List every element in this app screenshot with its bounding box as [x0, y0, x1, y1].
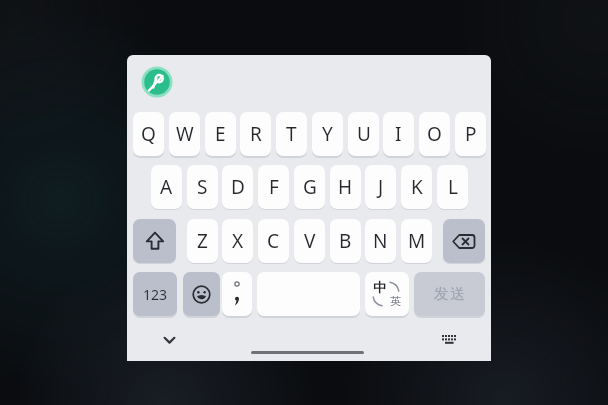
button[interactable]: T	[276, 112, 307, 156]
button[interactable]: O	[419, 112, 450, 156]
button[interactable]	[133, 219, 176, 263]
button[interactable]: J	[365, 165, 396, 209]
button[interactable]	[141, 66, 173, 98]
staticText: P	[465, 121, 477, 147]
staticText: E	[215, 121, 226, 147]
button[interactable]: E	[205, 112, 236, 156]
button[interactable]: C	[258, 219, 289, 263]
button[interactable]	[222, 272, 252, 316]
button[interactable]: 123	[133, 272, 177, 316]
button[interactable]: F	[258, 165, 289, 209]
staticText: S	[197, 174, 208, 200]
button[interactable]: Q	[133, 112, 164, 156]
staticText: K	[411, 174, 423, 200]
staticText: G	[303, 174, 317, 200]
button[interactable]	[156, 330, 182, 350]
staticText: A	[160, 174, 173, 200]
button[interactable]: K	[401, 165, 432, 209]
button[interactable]: L	[437, 165, 468, 209]
button[interactable]	[251, 351, 364, 354]
staticText: H	[338, 174, 353, 200]
staticText: Z	[197, 228, 208, 254]
staticText: L	[448, 174, 458, 200]
button[interactable]: N	[365, 219, 396, 263]
button[interactable]: V	[294, 219, 325, 263]
staticText: I	[395, 121, 402, 147]
button[interactable]: G	[294, 165, 325, 209]
button[interactable]: I	[383, 112, 414, 156]
button[interactable]	[436, 330, 462, 350]
button[interactable]: X	[222, 219, 253, 263]
button[interactable]: Y	[312, 112, 343, 156]
staticText: D	[231, 174, 245, 200]
button[interactable]: B	[330, 219, 361, 263]
staticText: N	[373, 228, 388, 254]
staticText: 123	[143, 285, 168, 304]
button[interactable]: A	[151, 165, 182, 209]
staticText: X	[232, 228, 244, 254]
button[interactable]: 中	[365, 272, 409, 316]
button[interactable]: S	[187, 165, 218, 209]
staticText: V	[304, 228, 316, 254]
staticText: 发送	[433, 285, 466, 304]
staticText: R	[250, 121, 262, 147]
staticText: J	[378, 174, 384, 200]
button[interactable]: U	[348, 112, 379, 156]
button[interactable]: W	[169, 112, 200, 156]
button[interactable]: 发送	[414, 272, 485, 316]
staticText: F	[269, 174, 279, 200]
button[interactable]: D	[222, 165, 253, 209]
staticText: 英	[390, 294, 401, 308]
staticText: Q	[141, 121, 156, 147]
staticText: 中	[373, 279, 386, 295]
staticText: T	[286, 121, 297, 147]
staticText: W	[176, 121, 194, 147]
button[interactable]: Z	[187, 219, 218, 263]
staticText: B	[339, 228, 352, 254]
staticText: Y	[322, 121, 333, 147]
button[interactable]: P	[455, 112, 486, 156]
button[interactable]: H	[330, 165, 361, 209]
button[interactable]: R	[240, 112, 271, 156]
staticText: C	[267, 228, 280, 254]
button[interactable]	[443, 219, 485, 263]
staticText: O	[427, 121, 442, 147]
button[interactable]: M	[401, 219, 432, 263]
staticText: U	[357, 121, 371, 147]
button[interactable]	[183, 272, 220, 316]
staticText: M	[408, 228, 426, 254]
